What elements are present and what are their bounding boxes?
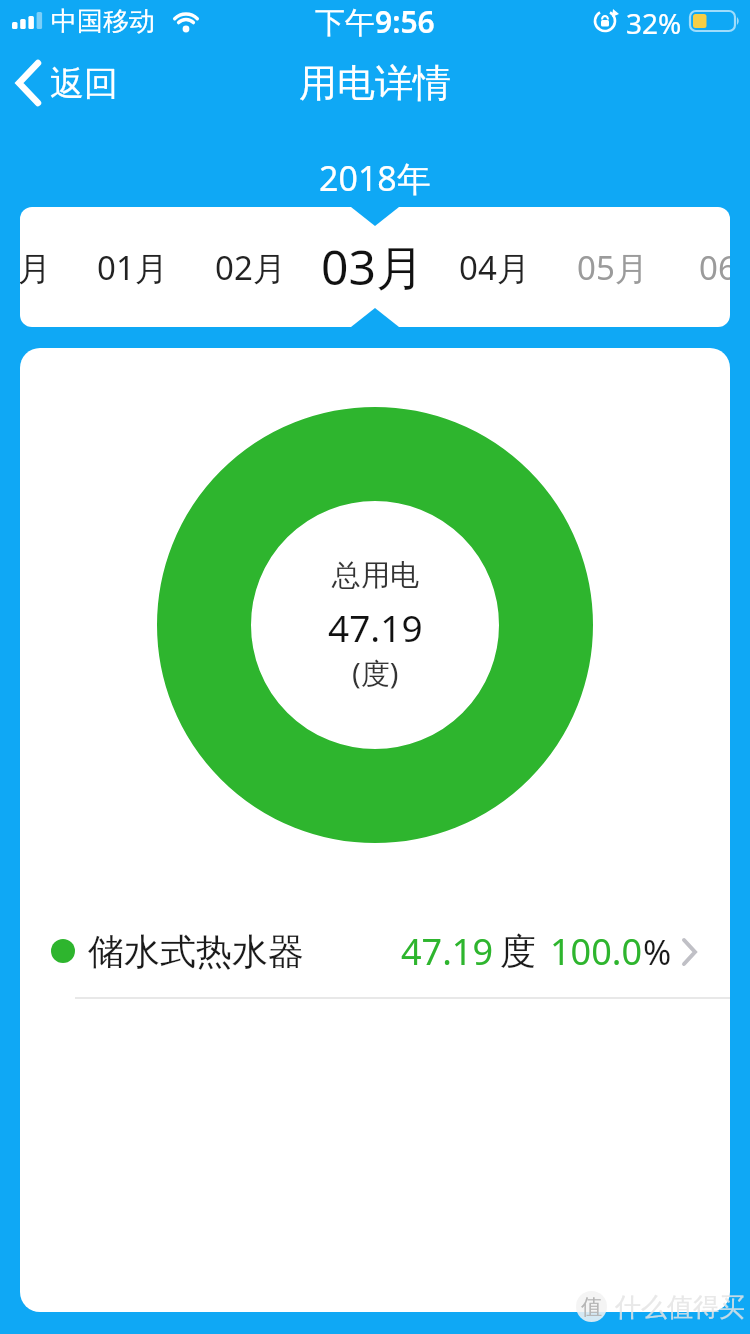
staticText: 03月 [321,234,424,300]
button[interactable]: 03月 [312,207,432,327]
staticText: 用电详情 [299,59,451,107]
staticText: 2018年 [319,155,431,199]
staticText: % [643,929,672,975]
staticText: 返回 [50,62,118,105]
button[interactable]: 02月 [190,207,310,327]
staticText: 值 [581,1294,602,1320]
button[interactable]: 12月 [20,207,75,327]
staticText: 储水式热水器 [88,929,304,974]
staticText: 47.19 [328,602,423,652]
staticText: 下午9:56 [315,1,435,42]
staticText: 04月 [459,245,530,290]
staticText: 100.0 [550,927,643,976]
staticText: 05月 [577,245,648,290]
button[interactable]: 06月 [674,207,730,327]
staticText: 47.19 [401,927,494,976]
staticText: 什么值得买 [615,1291,745,1322]
button[interactable]: 返回 [14,58,118,108]
button[interactable]: 储水式热水器 [20,921,730,981]
button[interactable]: 05月 [552,207,672,327]
staticText: 01月 [97,245,168,290]
staticText: (度) [352,653,399,693]
staticText: 度 [500,929,536,974]
staticText: 总用电 [332,557,419,594]
button[interactable]: 04月 [434,207,554,327]
staticText: 12月 [20,245,51,290]
staticText: 中国移动 [51,5,155,38]
staticText: 06月 [699,245,730,290]
staticText: 32% [626,4,682,38]
staticText: 02月 [215,245,286,290]
button[interactable]: 01月 [72,207,192,327]
